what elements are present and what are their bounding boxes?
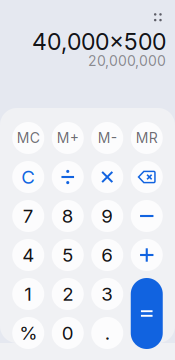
button[interactable]: Multiply xyxy=(91,161,123,193)
button[interactable]: C xyxy=(12,161,44,193)
staticText: C xyxy=(21,166,35,188)
staticText: 8 xyxy=(62,205,74,227)
staticText: MC xyxy=(17,129,40,146)
staticText: 9 xyxy=(101,205,113,227)
staticText: M+ xyxy=(57,129,79,146)
button[interactable]: Delete xyxy=(131,161,163,193)
staticText: 7 xyxy=(23,205,34,227)
button[interactable]: 2 xyxy=(52,278,84,310)
button[interactable]: 1 xyxy=(12,278,44,310)
staticText: % xyxy=(19,322,37,344)
button[interactable]: % xyxy=(12,317,44,349)
button[interactable]: 7 xyxy=(12,200,44,232)
staticText: 4 xyxy=(22,244,34,266)
button[interactable]: MR xyxy=(131,122,163,154)
staticText: 20,000,000 xyxy=(88,52,166,69)
button[interactable]: Subtract xyxy=(131,200,163,232)
staticText: 5 xyxy=(62,244,73,266)
button[interactable]: 5 xyxy=(52,239,84,271)
button[interactable]: 6 xyxy=(91,239,123,271)
button[interactable]: MC xyxy=(12,122,44,154)
staticText: M- xyxy=(98,129,117,146)
button[interactable]: M+ xyxy=(52,122,84,154)
staticText: . xyxy=(105,322,110,344)
button[interactable]: Divide xyxy=(52,161,84,193)
button[interactable]: Add xyxy=(131,239,163,271)
staticText: 6 xyxy=(101,244,113,266)
button[interactable]: 8 xyxy=(52,200,84,232)
staticText: 0 xyxy=(62,322,74,344)
staticText: 2 xyxy=(62,283,73,305)
button[interactable]: 4 xyxy=(12,239,44,271)
staticText: 40,000×500 xyxy=(32,28,166,55)
button[interactable]: M- xyxy=(91,122,123,154)
staticText: 3 xyxy=(101,283,113,305)
staticText: MR xyxy=(136,129,158,146)
button[interactable]: Equals xyxy=(131,278,163,349)
button[interactable]: . xyxy=(91,317,123,349)
staticText: 1 xyxy=(24,283,32,305)
button[interactable]: 3 xyxy=(91,278,123,310)
button[interactable]: 9 xyxy=(91,200,123,232)
button[interactable]: 0 xyxy=(52,317,84,349)
